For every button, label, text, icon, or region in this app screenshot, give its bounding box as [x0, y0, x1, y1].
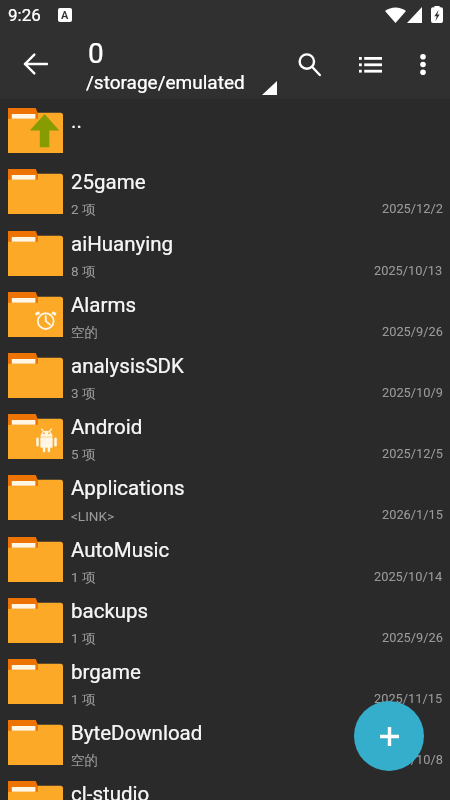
staticText: 2025/10/8 [382, 752, 443, 767]
staticText: 3 项 [71, 385, 96, 402]
staticText: /storage/emulated [86, 71, 245, 93]
staticText: 空的 [71, 752, 98, 769]
staticText: Alarms [71, 293, 137, 317]
button[interactable]: Back [11, 40, 59, 88]
staticText: 2025/9/26 [382, 630, 443, 645]
button[interactable]: 25game [0, 159, 450, 220]
staticText: 0 [88, 37, 104, 70]
staticText: backups [71, 599, 149, 623]
staticText: analysisSDK [71, 354, 184, 378]
button[interactable]: ByteDownload [0, 710, 450, 771]
staticText: A [61, 9, 69, 22]
button[interactable]: analysisSDK [0, 343, 450, 404]
button[interactable]: aiHuanying [0, 221, 450, 282]
staticText: Applications [71, 476, 185, 500]
staticText: 2025/12/2 [382, 201, 443, 216]
staticText: 1 项 [71, 691, 96, 708]
staticText: 9:26 [8, 5, 41, 25]
button[interactable]: Android [0, 404, 450, 465]
staticText: 2025/10/9 [382, 385, 443, 400]
staticText: 2025/10/13 [374, 263, 443, 278]
staticText: 2 项 [71, 201, 96, 218]
staticText: aiHuanying [71, 232, 174, 256]
staticText: 空的 [71, 324, 98, 341]
button[interactable]: Add [354, 701, 424, 771]
button[interactable]: .. [0, 98, 450, 159]
staticText: 1 项 [71, 630, 96, 647]
button[interactable]: cl-studio [0, 771, 450, 800]
staticText: .. [71, 109, 82, 133]
staticText: 25game [71, 170, 146, 194]
button[interactable]: Applications [0, 465, 450, 526]
staticText: 2025/10/14 [374, 569, 443, 584]
staticText: 8 项 [71, 263, 96, 280]
staticText: 1 项 [71, 569, 96, 586]
staticText: 2025/12/5 [382, 446, 443, 461]
button[interactable]: backups [0, 588, 450, 649]
staticText: 2025/11/15 [374, 691, 443, 706]
button[interactable]: AutoMusic [0, 527, 450, 588]
staticText: brgame [71, 660, 141, 684]
staticText: AutoMusic [71, 538, 170, 562]
staticText: cl-studio [71, 782, 150, 800]
button[interactable]: View mode [346, 41, 394, 89]
button[interactable]: brgame [0, 649, 450, 710]
staticText: 2025/9/26 [382, 324, 443, 339]
button[interactable]: More options [399, 40, 447, 88]
staticText: ByteDownload [71, 721, 203, 745]
staticText: <LINK> [71, 508, 114, 524]
button[interactable]: Alarms [0, 282, 450, 343]
staticText: Android [71, 415, 143, 439]
staticText: 2026/1/15 [382, 507, 443, 522]
staticText: 5 项 [71, 446, 96, 463]
button[interactable]: Search [285, 40, 333, 88]
